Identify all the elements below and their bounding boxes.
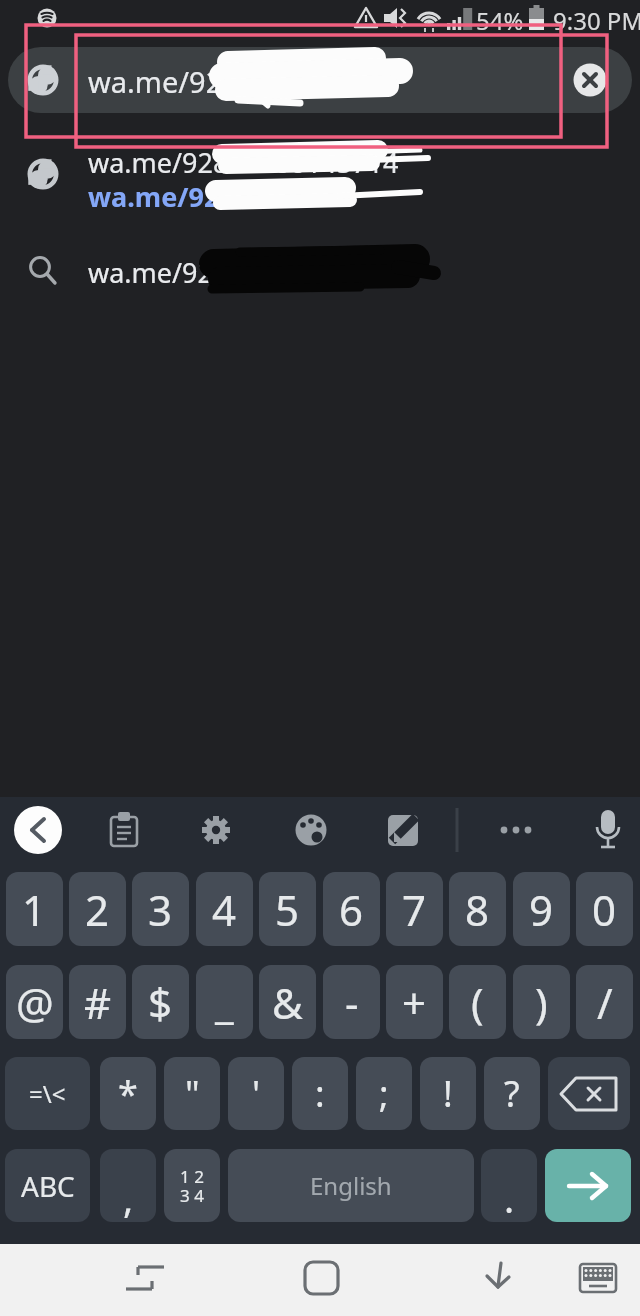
button[interactable]: 6 bbox=[323, 872, 380, 946]
staticText: / bbox=[597, 974, 613, 1031]
staticText: wa.me/92 bbox=[88, 254, 214, 291]
button[interactable] bbox=[386, 810, 426, 850]
staticText: 8 bbox=[465, 881, 490, 938]
staticText: ? bbox=[504, 1069, 520, 1118]
staticText: ABC bbox=[21, 1167, 75, 1205]
button[interactable]: ; bbox=[356, 1057, 412, 1130]
button[interactable] bbox=[300, 1256, 344, 1300]
staticText: ' bbox=[252, 1069, 261, 1118]
staticText: _ bbox=[215, 974, 234, 1031]
staticText: 2 bbox=[85, 881, 110, 938]
button[interactable]: English bbox=[228, 1149, 474, 1222]
button[interactable]: ! bbox=[420, 1057, 476, 1130]
button[interactable] bbox=[545, 1149, 631, 1222]
button[interactable]: @ bbox=[6, 965, 63, 1039]
button[interactable]: 0 bbox=[576, 872, 633, 946]
button[interactable]: wa.me/92810000145714 bbox=[0, 140, 640, 220]
button[interactable]: * bbox=[100, 1057, 156, 1130]
staticText: & bbox=[272, 974, 303, 1031]
staticText: 0 bbox=[592, 881, 617, 938]
staticText: @ bbox=[16, 974, 54, 1031]
staticText: ! bbox=[443, 1069, 453, 1118]
button[interactable]: 3 bbox=[132, 872, 189, 946]
button[interactable]: 5 bbox=[259, 872, 316, 946]
staticText: # bbox=[84, 974, 112, 1031]
button[interactable] bbox=[592, 806, 626, 854]
button[interactable]: 2 bbox=[69, 872, 126, 946]
button[interactable] bbox=[548, 1057, 630, 1130]
button[interactable]: =\< bbox=[5, 1057, 90, 1130]
staticText: , bbox=[123, 1172, 134, 1222]
staticText: ; bbox=[379, 1069, 389, 1118]
button[interactable] bbox=[8, 47, 632, 113]
button[interactable]: ABC bbox=[5, 1149, 90, 1222]
button[interactable]: 7 bbox=[386, 872, 443, 946]
button[interactable]: / bbox=[576, 965, 633, 1039]
button[interactable]: 8 bbox=[449, 872, 506, 946]
button[interactable]: 1 2 3 4 bbox=[164, 1149, 220, 1222]
staticText: : bbox=[315, 1069, 325, 1118]
button[interactable]: ? bbox=[484, 1057, 540, 1130]
button[interactable]: ) bbox=[513, 965, 570, 1039]
button[interactable]: wa.me/92 bbox=[0, 244, 640, 300]
button[interactable]: 1 bbox=[6, 872, 63, 946]
staticText: 9 bbox=[529, 881, 554, 938]
staticText: ) bbox=[535, 974, 548, 1031]
button[interactable] bbox=[570, 60, 610, 100]
staticText: * bbox=[118, 1069, 138, 1118]
staticText: 1 bbox=[22, 881, 47, 938]
button[interactable]: 4 bbox=[196, 872, 253, 946]
button[interactable] bbox=[14, 806, 62, 854]
button[interactable]: ( bbox=[449, 965, 506, 1039]
button[interactable] bbox=[106, 810, 146, 850]
button[interactable] bbox=[478, 1256, 522, 1300]
staticText: wa.me/92810000145714 bbox=[88, 144, 399, 181]
button[interactable] bbox=[292, 810, 332, 850]
staticText: 9:30 PM bbox=[553, 4, 640, 37]
staticText: - bbox=[345, 974, 359, 1031]
staticText: =\< bbox=[29, 1077, 66, 1110]
staticText: wa.me/928 bbox=[88, 62, 239, 101]
staticText: ( bbox=[471, 974, 484, 1031]
button[interactable]: " bbox=[164, 1057, 220, 1130]
staticText: " bbox=[185, 1069, 200, 1118]
staticText: English bbox=[310, 1169, 392, 1202]
button[interactable]: ' bbox=[228, 1057, 284, 1130]
button[interactable]: + bbox=[386, 965, 443, 1039]
button[interactable]: : bbox=[292, 1057, 348, 1130]
staticText: 1 2 3 4 bbox=[180, 1165, 204, 1207]
staticText: $ bbox=[148, 974, 173, 1031]
button[interactable] bbox=[196, 810, 236, 850]
button[interactable] bbox=[576, 1258, 620, 1298]
button[interactable]: $ bbox=[132, 965, 189, 1039]
staticText: . bbox=[504, 1172, 515, 1222]
staticText: 5 bbox=[275, 881, 300, 938]
button[interactable]: , bbox=[100, 1149, 156, 1222]
staticText: 3 bbox=[148, 881, 173, 938]
staticText: 4 bbox=[212, 881, 237, 938]
staticText: 6 bbox=[339, 881, 364, 938]
button[interactable] bbox=[118, 1258, 172, 1300]
button[interactable] bbox=[494, 810, 538, 850]
staticText: 54% bbox=[476, 4, 524, 37]
button[interactable]: . bbox=[481, 1149, 537, 1222]
button[interactable]: 9 bbox=[513, 872, 570, 946]
staticText: 7 bbox=[402, 881, 427, 938]
staticText: + bbox=[402, 974, 427, 1031]
button[interactable]: _ bbox=[196, 965, 253, 1039]
staticText: wa.me/92 bbox=[88, 178, 220, 215]
button[interactable]: # bbox=[69, 965, 126, 1039]
button[interactable]: - bbox=[323, 965, 380, 1039]
button[interactable]: & bbox=[259, 965, 316, 1039]
